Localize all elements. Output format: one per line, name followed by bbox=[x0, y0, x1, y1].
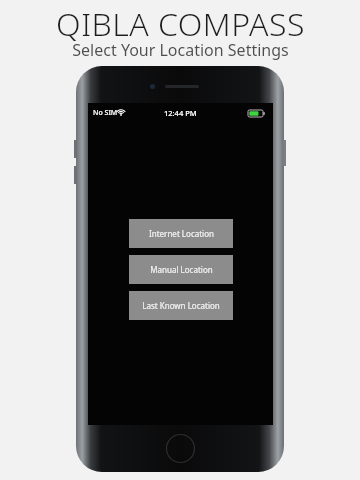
button[interactable]: Manual Location bbox=[129, 255, 233, 284]
staticText: Last Known Location bbox=[142, 300, 220, 311]
staticText: QIBLA COMPASS bbox=[56, 2, 305, 46]
button[interactable]: Last Known Location bbox=[129, 291, 233, 320]
staticText: Manual Location bbox=[150, 264, 213, 275]
staticText: No SIM bbox=[93, 108, 118, 118]
staticText: 12:44 PM bbox=[164, 108, 197, 118]
staticText: Internet Location bbox=[149, 228, 214, 239]
staticText: Select Your Location Settings bbox=[72, 39, 289, 61]
button[interactable]: Internet Location bbox=[129, 219, 233, 248]
